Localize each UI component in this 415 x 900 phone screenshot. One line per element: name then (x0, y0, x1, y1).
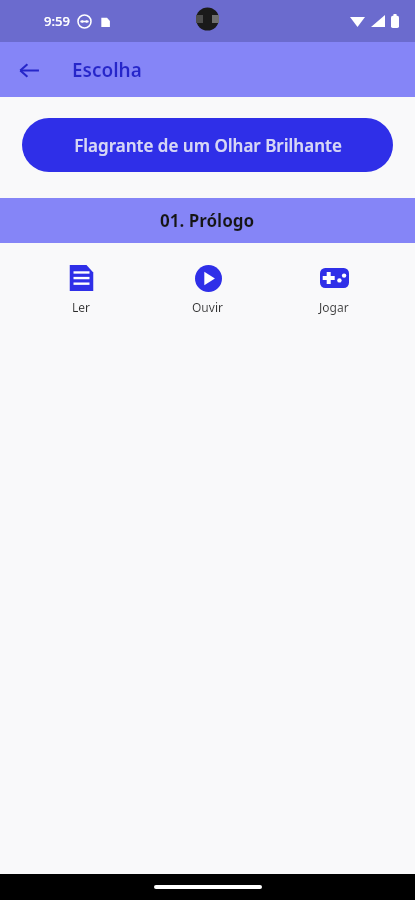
staticText: 01. Prólogo (160, 209, 255, 232)
button[interactable]: Read (60, 261, 102, 317)
button[interactable]: Flagrante de um Olhar Brilhante (22, 118, 393, 172)
staticText: Flagrante de um Olhar Brilhante (74, 134, 342, 157)
staticText: Ler (72, 299, 91, 315)
button[interactable]: Play game (313, 261, 355, 317)
staticText: Ouvir (192, 299, 223, 315)
button[interactable]: 01. Prólogo (0, 198, 415, 243)
button[interactable]: Listen (186, 261, 229, 317)
staticText: Escolha (72, 57, 142, 83)
button[interactable]: Back (10, 51, 48, 89)
staticText: Jogar (319, 299, 349, 315)
staticText: 9:59 (44, 12, 70, 30)
